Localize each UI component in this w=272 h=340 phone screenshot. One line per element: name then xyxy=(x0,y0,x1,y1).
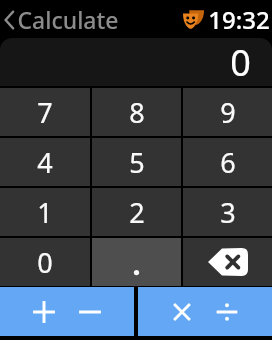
button[interactable]: 4 xyxy=(0,138,90,186)
staticText: 0 xyxy=(37,244,53,281)
other: Plus xyxy=(31,299,57,325)
staticText: 9 xyxy=(220,94,236,131)
button[interactable]: Multiply xyxy=(138,287,272,336)
button[interactable]: 0 xyxy=(0,38,272,86)
button[interactable]: 0 xyxy=(0,238,90,286)
staticText: 19:32 xyxy=(208,3,270,36)
staticText: Calculate xyxy=(17,4,119,35)
staticText: 3 xyxy=(220,194,236,231)
button[interactable]: Calculate xyxy=(0,4,125,35)
button[interactable]: 7 xyxy=(0,88,90,136)
other: Divide xyxy=(214,299,240,325)
button[interactable]: Plus xyxy=(0,287,134,336)
staticText: 5 xyxy=(129,144,145,181)
staticText: 7 xyxy=(37,94,53,131)
staticText: 6 xyxy=(220,144,236,181)
staticText: 8 xyxy=(129,94,145,131)
button[interactable]: 5 xyxy=(92,138,181,186)
staticText: 0 xyxy=(230,38,251,86)
button[interactable]: 6 xyxy=(183,138,272,186)
other: Theater masks xyxy=(182,9,206,31)
button[interactable]: Backspace xyxy=(183,238,272,286)
button[interactable]: 1 xyxy=(0,188,90,236)
staticText: 4 xyxy=(37,144,53,181)
other: Multiply xyxy=(170,300,194,324)
button[interactable]: 2 xyxy=(92,188,181,236)
button[interactable]: 9 xyxy=(183,88,272,136)
button[interactable] xyxy=(92,238,181,286)
button[interactable]: 8 xyxy=(92,88,181,136)
other: Minus xyxy=(77,299,103,325)
staticText: 2 xyxy=(129,194,145,231)
staticText: 1 xyxy=(37,194,53,231)
button[interactable]: 3 xyxy=(183,188,272,236)
